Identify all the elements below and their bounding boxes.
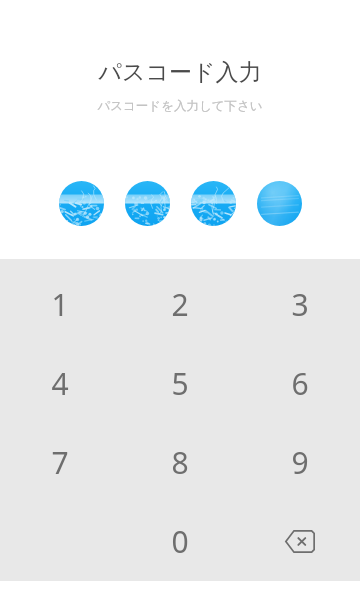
button[interactable]: 4 — [0, 344, 120, 423]
staticText: 8 — [171, 442, 189, 483]
button[interactable]: 2 — [120, 265, 240, 344]
staticText: 6 — [291, 363, 309, 404]
button[interactable]: 8 — [120, 423, 240, 502]
staticText: 4 — [51, 363, 69, 404]
button[interactable]: 3 — [240, 265, 360, 344]
button[interactable]: 6 — [240, 344, 360, 423]
staticText: 7 — [51, 442, 69, 483]
staticText: 5 — [171, 363, 189, 404]
staticText: 0 — [171, 521, 189, 562]
staticText: 3 — [291, 284, 309, 325]
button[interactable]: Delete — [240, 502, 360, 581]
staticText: 2 — [171, 284, 189, 325]
staticText: パスコード入力 — [98, 58, 262, 87]
staticText: 1 — [51, 284, 69, 325]
button[interactable]: 9 — [240, 423, 360, 502]
button[interactable]: 0 — [120, 502, 240, 581]
staticText: パスコードを入力して下さい — [97, 98, 263, 114]
button[interactable]: 7 — [0, 423, 120, 502]
staticText: 9 — [291, 442, 309, 483]
button[interactable]: 5 — [120, 344, 240, 423]
button[interactable]: 1 — [0, 265, 120, 344]
